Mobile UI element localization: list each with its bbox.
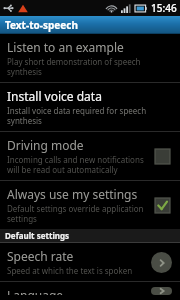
staticText: Install voice data required for speech s… — [7, 105, 174, 126]
button[interactable]: Open — [151, 252, 172, 273]
staticText: Speed at which the text is spoken — [7, 265, 133, 276]
button[interactable]: Unchecked — [152, 146, 172, 166]
button[interactable]: Driving mode — [0, 132, 180, 180]
button[interactable]: Speech rate — [0, 243, 180, 281]
button[interactable]: Checked — [152, 195, 172, 215]
staticText: Incoming calls and new notifications wil… — [7, 154, 146, 175]
button[interactable]: Open — [151, 287, 172, 295]
button[interactable]: Install voice data — [0, 83, 180, 131]
staticText: Listen to an example — [7, 39, 124, 55]
staticText: Speech rate — [7, 248, 74, 264]
staticText: Play short demonstration of speech synth… — [7, 56, 174, 77]
staticText: Always use my settings — [7, 186, 138, 202]
button[interactable]: Always use my settings — [0, 181, 180, 229]
staticText: Default settings override application se… — [7, 203, 146, 224]
button[interactable]: Language — [0, 282, 180, 300]
button[interactable]: Listen to an example — [0, 34, 180, 82]
staticText: Install voice data — [7, 88, 102, 104]
staticText: Language — [7, 287, 64, 295]
staticText: Text-to-speech — [5, 18, 78, 32]
staticText: Driving mode — [7, 137, 84, 153]
staticText: 15:46 — [151, 1, 177, 15]
staticText: Default settings — [5, 230, 70, 241]
